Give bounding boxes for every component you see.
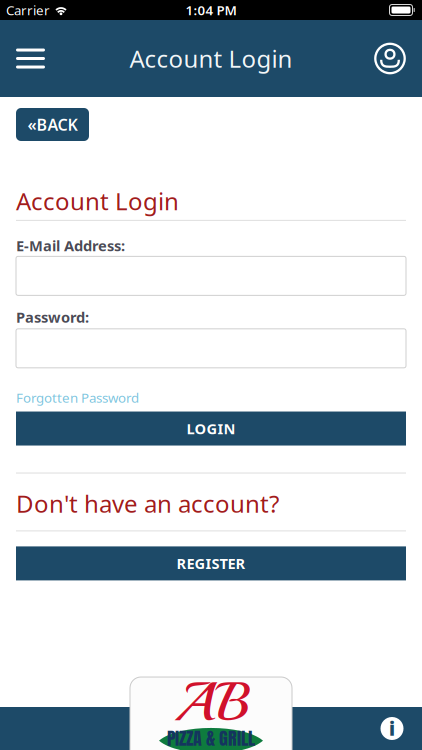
staticText: i bbox=[389, 716, 395, 741]
button[interactable]: «BACK bbox=[16, 108, 89, 141]
staticText: Password: bbox=[16, 307, 89, 327]
staticText: LOGIN bbox=[186, 419, 235, 438]
staticText: REGISTER bbox=[176, 554, 245, 573]
staticText: Account Login bbox=[16, 185, 179, 217]
button[interactable]: Menu bbox=[0, 20, 74, 97]
staticText: PIZZA & GRILL bbox=[167, 725, 255, 750]
button[interactable]: LOGIN bbox=[0, 411, 422, 445]
staticText: «BACK bbox=[27, 114, 77, 135]
staticText: AB bbox=[174, 670, 248, 736]
button[interactable]: REGISTER bbox=[0, 546, 422, 580]
button[interactable]: Account bbox=[348, 20, 422, 97]
staticText: Forgotten Password bbox=[16, 389, 139, 406]
staticText: Account Login bbox=[129, 43, 292, 74]
staticText: Carrier bbox=[6, 1, 50, 19]
button[interactable]: Info bbox=[370, 707, 414, 750]
button[interactable]: Forgotten Password bbox=[0, 389, 155, 406]
staticText: E-Mail Address: bbox=[16, 236, 125, 255]
staticText: Don't have an account? bbox=[16, 487, 279, 519]
staticText: 1:04 PM bbox=[185, 1, 236, 19]
